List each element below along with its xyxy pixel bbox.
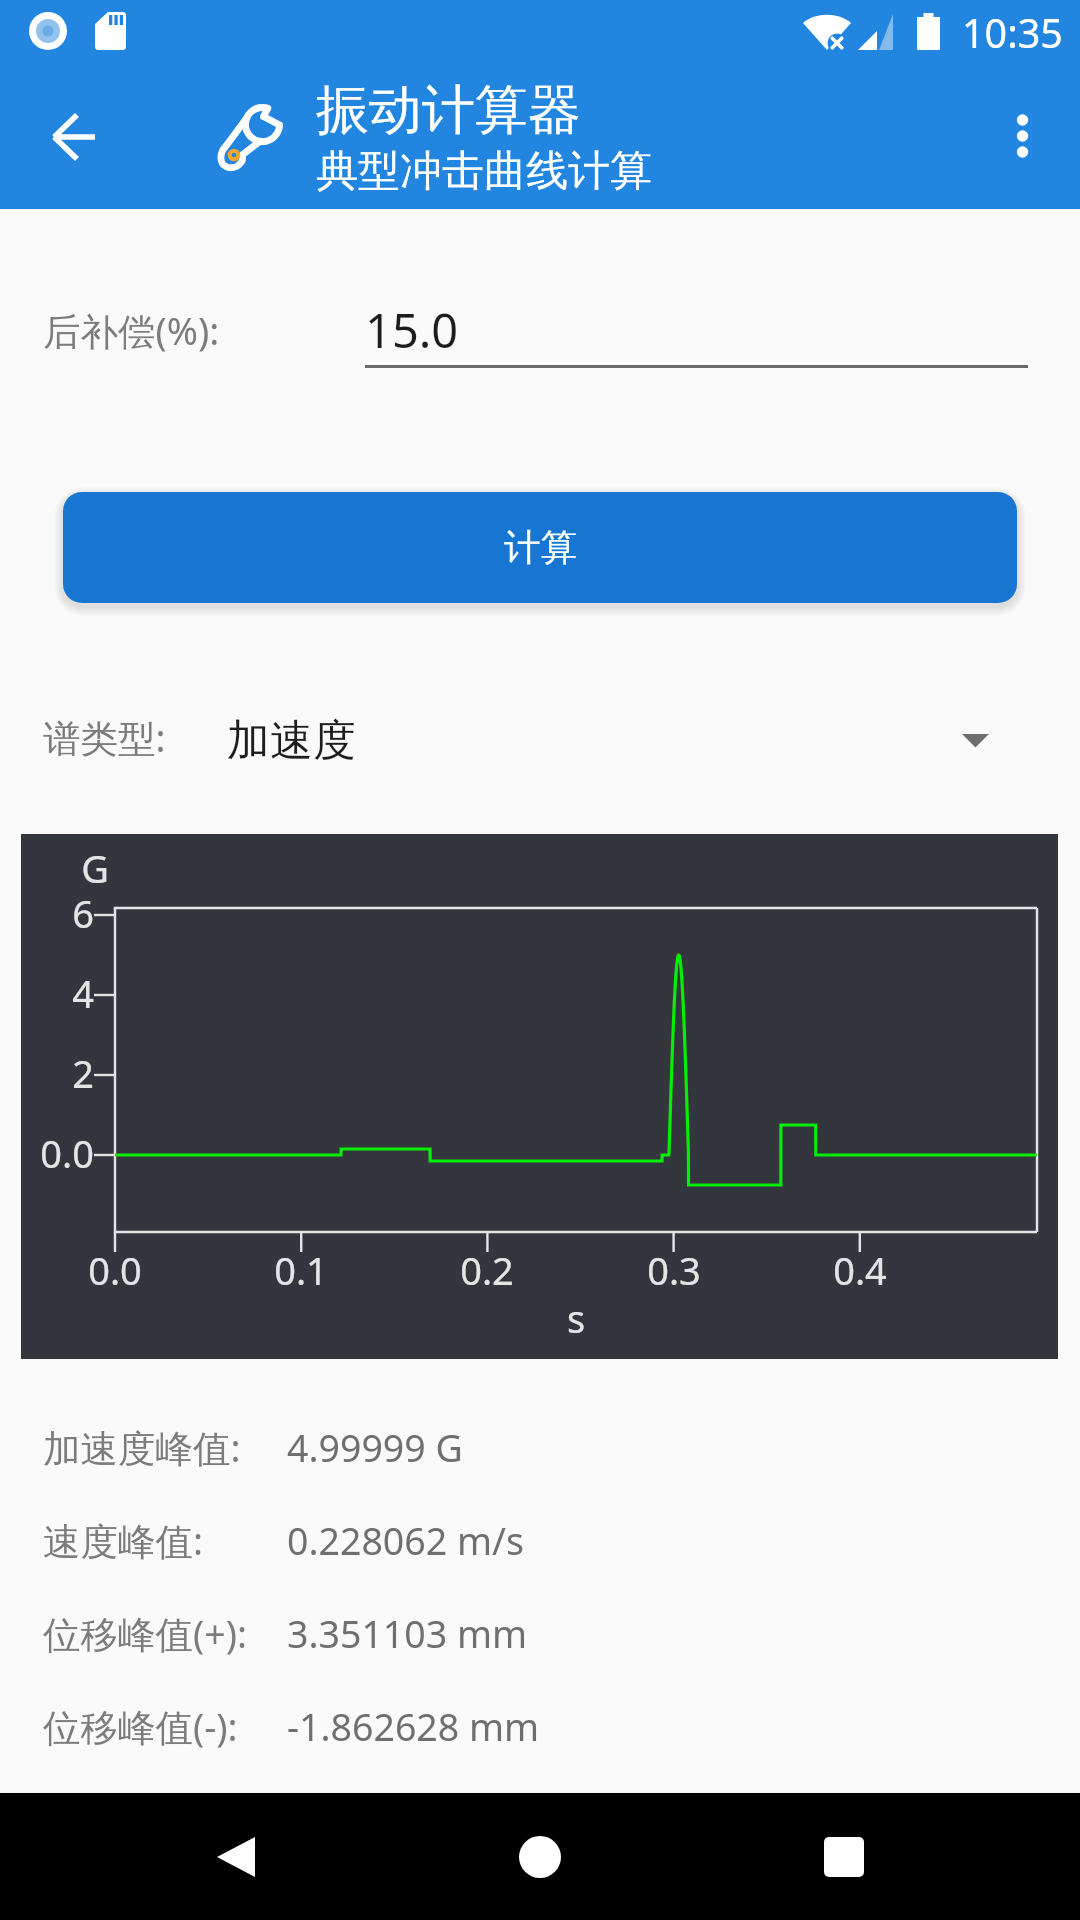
staticText: 3.351103 mm	[287, 1608, 528, 1659]
button[interactable]: Back	[146, 1793, 326, 1920]
button[interactable]: More options	[970, 66, 1080, 209]
staticText: 10:35	[962, 6, 1063, 60]
staticText: -1.862628 mm	[287, 1701, 540, 1752]
staticText: 0.1	[241, 1244, 361, 1296]
staticText: 典型冲击曲线计算	[316, 145, 652, 198]
staticText: s	[526, 1292, 626, 1344]
staticText: 0.3	[614, 1244, 734, 1296]
button[interactable]: Recent apps	[754, 1793, 934, 1920]
staticText: 加速度峰值:	[43, 1422, 241, 1473]
staticText: 0.0	[55, 1244, 175, 1296]
staticText: 0.2	[427, 1244, 547, 1296]
staticText: 位移峰值(-):	[43, 1701, 238, 1752]
button[interactable]: Back	[0, 66, 140, 209]
staticText: 位移峰值(+):	[43, 1608, 247, 1659]
staticText: 0.0	[0, 1127, 94, 1179]
staticText: 加速度	[227, 714, 356, 768]
staticText: 0.228062 m/s	[287, 1515, 524, 1566]
staticText: 6	[0, 887, 94, 939]
staticText: 2	[0, 1047, 94, 1099]
staticText: 谱类型:	[43, 712, 166, 763]
button[interactable]: Home	[450, 1793, 630, 1920]
staticText: 4	[0, 967, 94, 1019]
staticText: 后补偿(%):	[43, 305, 220, 356]
staticText: 计算	[504, 525, 577, 571]
staticText: 15.0	[365, 298, 459, 362]
staticText: 振动计算器	[316, 77, 581, 144]
button[interactable]: 谱类型:	[0, 690, 1080, 795]
button[interactable]: 计算	[63, 492, 1017, 603]
staticText: 速度峰值:	[43, 1515, 204, 1566]
staticText: 0.4	[800, 1244, 920, 1296]
staticText: G	[9, 842, 109, 894]
staticText: 4.99999 G	[287, 1422, 463, 1473]
